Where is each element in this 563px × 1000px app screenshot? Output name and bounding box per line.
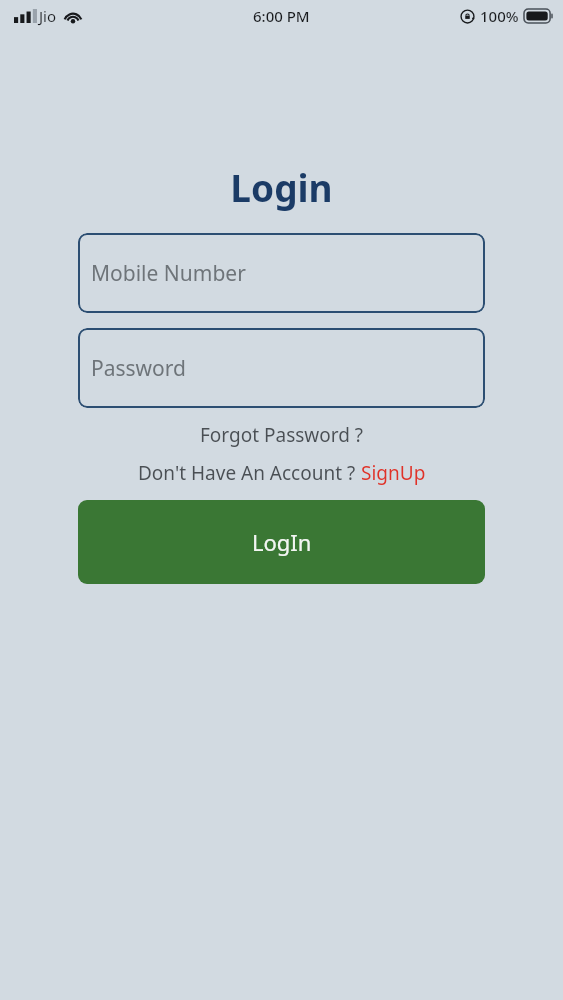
staticText: Forgot Password ?	[200, 422, 364, 448]
staticText: Login	[230, 162, 333, 212]
staticText: 6:00 PM	[253, 6, 310, 26]
staticText: 100%	[480, 6, 519, 26]
staticText: Password	[91, 354, 186, 383]
button[interactable]: Forgot Password ?	[194, 420, 370, 450]
button[interactable]: SignUp	[361, 460, 426, 486]
staticText: Jio	[39, 6, 57, 26]
button[interactable]: LogIn	[78, 500, 485, 584]
button[interactable]: Password	[78, 328, 485, 408]
staticText: Don't Have An Account ?	[138, 460, 361, 486]
staticText: SignUp	[361, 460, 426, 486]
staticText: Mobile Number	[91, 259, 246, 288]
button[interactable]: Mobile Number	[78, 233, 485, 313]
staticText: LogIn	[252, 527, 312, 557]
